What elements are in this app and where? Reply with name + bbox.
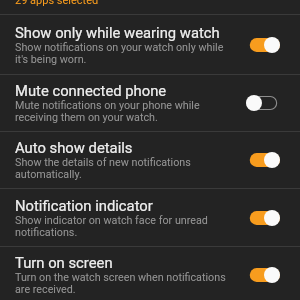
staticText: Auto show details <box>15 139 133 156</box>
staticText: notifications. <box>15 226 78 239</box>
staticText: Notification indicator <box>15 197 153 214</box>
staticText: automatically. <box>15 168 82 181</box>
button[interactable]: Auto show details <box>0 132 300 188</box>
staticText: Turn on screen <box>15 254 113 271</box>
button[interactable]: Notification indicator <box>0 189 300 246</box>
button[interactable]: Toggle on <box>246 210 280 226</box>
staticText: Show the details of new notifications <box>15 156 191 169</box>
button[interactable]: Turn on screen <box>0 247 300 300</box>
button[interactable]: Show only while wearing watch <box>0 15 300 74</box>
staticText: receiving them on your watch. <box>15 111 158 124</box>
staticText: Mute connected phone <box>15 82 167 99</box>
staticText: Turn on the watch screen when notificati… <box>15 271 226 284</box>
button[interactable]: Toggle off <box>246 95 280 111</box>
staticText: it's being worn. <box>15 53 87 66</box>
staticText: 29 apps selected <box>15 0 99 7</box>
staticText: Show only while wearing watch <box>15 24 220 41</box>
staticText: are received. <box>15 283 76 296</box>
button[interactable]: Toggle on <box>246 267 280 283</box>
staticText: Mute notifications on your phone while <box>15 99 200 112</box>
button[interactable]: Toggle on <box>246 37 280 53</box>
staticText: Show notifications on your watch only wh… <box>15 41 224 54</box>
staticText: Show indicator on watch face for unread <box>15 214 208 227</box>
button[interactable]: Toggle on <box>246 152 280 168</box>
button[interactable]: Mute connected phone <box>0 75 300 131</box>
